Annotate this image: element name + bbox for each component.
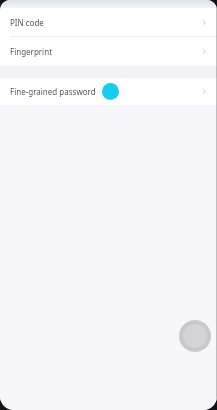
button[interactable]: Fingerprint	[0, 37, 217, 66]
staticText: Fine-grained password	[10, 86, 96, 97]
staticText: PIN code	[10, 17, 44, 28]
button[interactable]: PIN code	[0, 8, 217, 36]
staticText: Fingerprint	[10, 46, 53, 57]
button[interactable]: Add	[179, 320, 211, 352]
button[interactable]: Fine-grained password	[0, 78, 217, 105]
